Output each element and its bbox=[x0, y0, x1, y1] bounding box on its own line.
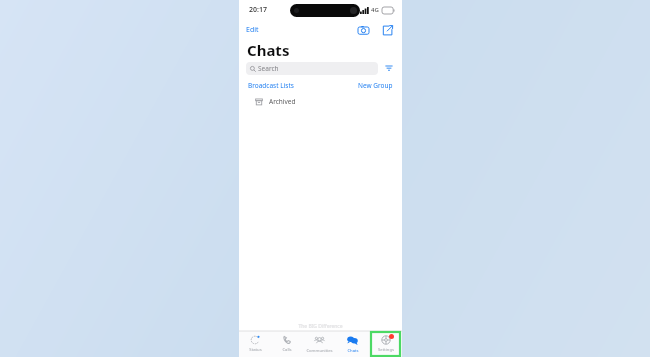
staticText: Edit bbox=[246, 25, 259, 35]
staticText: 4G bbox=[371, 6, 379, 14]
staticText: Archived bbox=[269, 97, 296, 106]
staticText: Search bbox=[258, 64, 279, 73]
button[interactable]: Broadcast Lists bbox=[247, 79, 295, 92]
staticText: Chats bbox=[247, 40, 290, 59]
button[interactable]: Calls bbox=[271, 331, 303, 357]
staticText: Broadcast Lists bbox=[248, 81, 294, 90]
button[interactable]: Archived bbox=[239, 93, 402, 110]
staticText: Chats bbox=[347, 348, 359, 354]
staticText: 20:17 bbox=[249, 5, 267, 15]
staticText: Status bbox=[249, 347, 262, 353]
button[interactable]: New Group bbox=[357, 79, 394, 92]
staticText: New Group bbox=[358, 81, 393, 90]
staticText: Communities bbox=[306, 348, 333, 354]
button[interactable]: Edit bbox=[239, 22, 265, 38]
button[interactable]: Filter bbox=[383, 62, 395, 74]
button[interactable]: Camera bbox=[355, 22, 372, 39]
button[interactable]: Settings bbox=[369, 331, 402, 357]
button[interactable]: Status bbox=[239, 331, 271, 357]
button[interactable]: Search bbox=[246, 62, 378, 75]
staticText: The BIG Difference bbox=[298, 323, 343, 330]
button[interactable]: New message bbox=[379, 22, 396, 39]
button[interactable]: Communities bbox=[303, 331, 336, 357]
staticText: Settings bbox=[378, 347, 394, 353]
button[interactable]: Chats bbox=[336, 331, 369, 357]
staticText: Calls bbox=[282, 347, 292, 353]
